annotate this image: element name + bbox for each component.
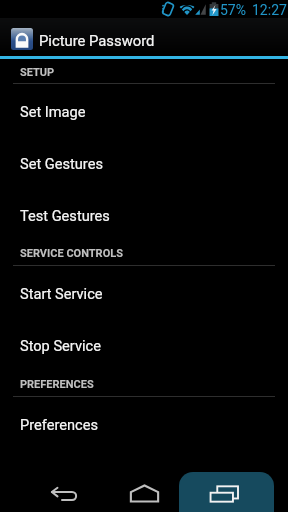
button[interactable]: Start Service bbox=[0, 266, 288, 318]
staticText: SETUP bbox=[20, 66, 55, 79]
staticText: Set Gestures bbox=[20, 155, 103, 172]
button[interactable]: Home bbox=[104, 460, 184, 512]
staticText: Preferences bbox=[20, 416, 98, 433]
staticText: 12:27 bbox=[252, 2, 287, 18]
button[interactable]: Set Gestures bbox=[0, 136, 288, 188]
staticText: Picture Password bbox=[39, 32, 155, 49]
button[interactable]: Stop Service bbox=[0, 318, 288, 370]
button[interactable]: Set Image bbox=[0, 84, 288, 136]
staticText: PREFERENCES bbox=[20, 378, 94, 391]
button[interactable]: Back bbox=[24, 460, 104, 512]
staticText: Test Gestures bbox=[20, 207, 110, 224]
button[interactable]: Test Gestures bbox=[0, 188, 288, 240]
staticText: Start Service bbox=[20, 285, 103, 302]
staticText: Set Image bbox=[20, 103, 86, 120]
staticText: 57% bbox=[220, 2, 246, 18]
button[interactable]: Preferences bbox=[0, 397, 288, 449]
staticText: Stop Service bbox=[20, 337, 101, 354]
staticText: SERVICE CONTROLS bbox=[20, 247, 123, 260]
button[interactable]: Recent apps bbox=[184, 460, 264, 512]
